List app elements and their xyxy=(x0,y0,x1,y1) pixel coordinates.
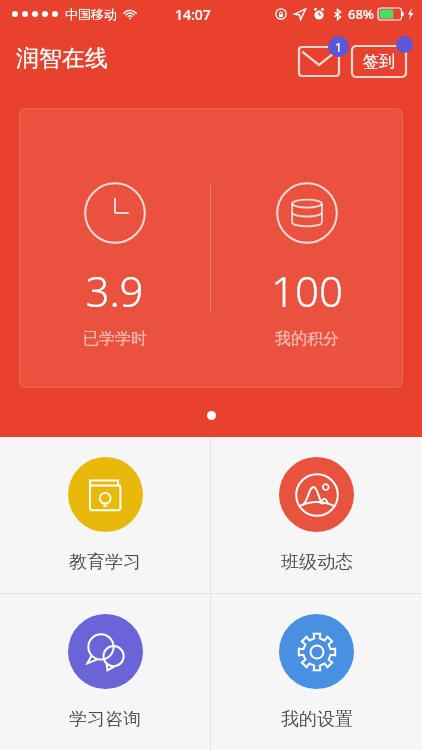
staticText: 班级动态 xyxy=(281,551,353,574)
staticText: 我的积分 xyxy=(275,329,339,349)
staticText: 签到 xyxy=(363,52,395,72)
button[interactable]: 100 xyxy=(211,147,403,349)
button[interactable]: 学习咨询 xyxy=(0,594,210,750)
staticText: 已学学时 xyxy=(83,329,147,349)
staticText: 100 xyxy=(271,262,343,319)
staticText: 我的设置 xyxy=(281,708,353,731)
staticText: 教育学习 xyxy=(69,551,141,574)
staticText: 68% xyxy=(348,5,374,23)
button[interactable]: 我的设置 xyxy=(211,594,422,750)
button[interactable]: 3.9 xyxy=(19,147,210,349)
button[interactable]: 班级动态 xyxy=(211,437,422,593)
button[interactable]: Messages xyxy=(299,36,349,80)
staticText: 润智在线 xyxy=(16,44,108,73)
staticText: 3.9 xyxy=(85,262,144,319)
staticText: 14:07 xyxy=(175,5,211,24)
button[interactable]: 签到 xyxy=(352,36,414,80)
staticText: 1 xyxy=(335,39,342,55)
staticText: 中国移动 xyxy=(65,6,117,22)
button[interactable]: 教育学习 xyxy=(0,437,210,593)
staticText: 学习咨询 xyxy=(69,708,141,731)
